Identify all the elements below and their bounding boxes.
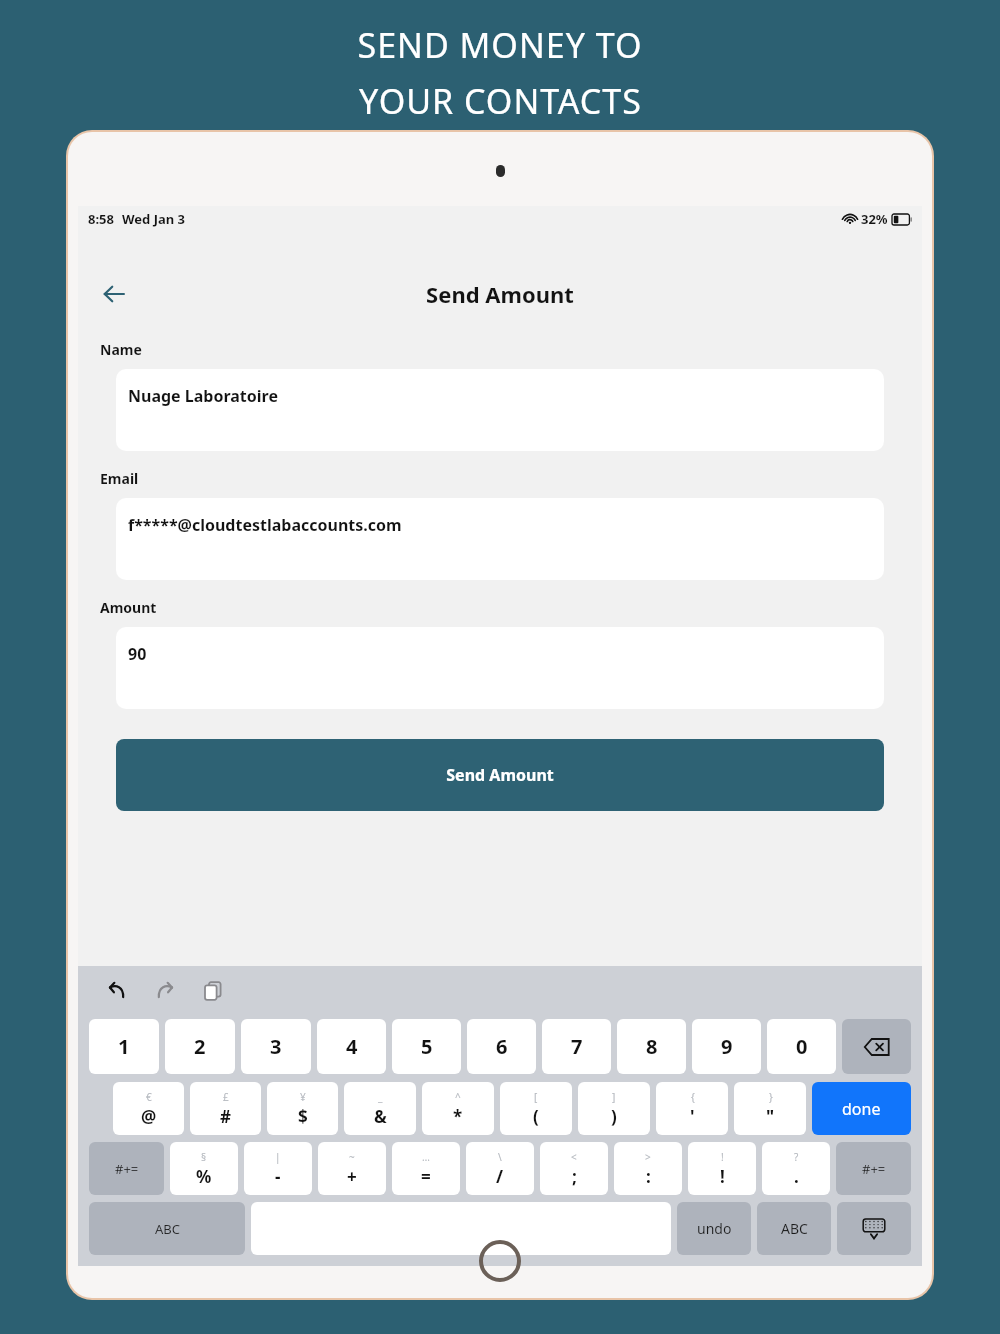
staticText: undo bbox=[697, 1219, 732, 1238]
staticText: 4 bbox=[346, 1033, 358, 1060]
button[interactable]: [ bbox=[500, 1082, 572, 1135]
staticText: ? bbox=[794, 1150, 799, 1164]
button[interactable]: 9 bbox=[692, 1019, 761, 1074]
button[interactable]: Back bbox=[92, 274, 136, 314]
staticText: _ bbox=[378, 1090, 383, 1104]
button[interactable]: #+= bbox=[836, 1142, 911, 1195]
staticText: … bbox=[422, 1150, 430, 1164]
button[interactable]: Send Amount bbox=[116, 739, 884, 811]
staticText: ( bbox=[533, 1105, 539, 1128]
staticText: \ bbox=[498, 1150, 502, 1164]
staticText: 7 bbox=[571, 1033, 583, 1060]
staticText: [ bbox=[534, 1090, 538, 1104]
button[interactable]: £ bbox=[190, 1082, 261, 1135]
staticText: 32% bbox=[861, 210, 888, 228]
staticText: > bbox=[645, 1150, 651, 1164]
staticText: 1 bbox=[118, 1033, 130, 1060]
button[interactable]: Redo bbox=[148, 974, 182, 1008]
button[interactable]: 8 bbox=[617, 1019, 686, 1074]
staticText: - bbox=[275, 1165, 281, 1188]
button[interactable]: > bbox=[614, 1142, 682, 1195]
staticText: € bbox=[146, 1090, 152, 1104]
button[interactable]: ¥ bbox=[267, 1082, 338, 1135]
staticText: ] bbox=[612, 1090, 616, 1104]
button[interactable]: € bbox=[113, 1082, 184, 1135]
button[interactable]: Hide keyboard bbox=[837, 1202, 911, 1255]
staticText: 3 bbox=[270, 1033, 282, 1060]
staticText: ) bbox=[611, 1105, 617, 1128]
button[interactable]: ? bbox=[762, 1142, 830, 1195]
button[interactable]: Space bbox=[251, 1202, 671, 1255]
staticText: ~ bbox=[349, 1150, 355, 1164]
staticText: + bbox=[347, 1165, 357, 1188]
staticText: # bbox=[220, 1105, 231, 1128]
button[interactable]: Undo bbox=[100, 974, 134, 1008]
button[interactable]: 6 bbox=[467, 1019, 536, 1074]
staticText: @ bbox=[141, 1105, 157, 1128]
button[interactable]: Nuage Laboratoire bbox=[116, 369, 884, 451]
staticText: < bbox=[571, 1150, 577, 1164]
staticText: Wed Jan 3 bbox=[122, 210, 186, 228]
button[interactable]: 7 bbox=[542, 1019, 611, 1074]
button[interactable]: 90 bbox=[116, 627, 884, 709]
staticText: ABC bbox=[155, 1220, 180, 1238]
button[interactable]: f*****@cloudtestlabaccounts.com bbox=[116, 498, 884, 580]
button[interactable]: } bbox=[734, 1082, 806, 1135]
staticText: ! bbox=[720, 1165, 725, 1188]
button[interactable]: 3 bbox=[241, 1019, 311, 1074]
button[interactable]: #+= bbox=[89, 1142, 164, 1195]
staticText: " bbox=[766, 1105, 775, 1128]
staticText: 8 bbox=[646, 1033, 658, 1060]
staticText: 9 bbox=[721, 1033, 733, 1060]
staticText: / bbox=[496, 1165, 504, 1188]
button[interactable]: ] bbox=[578, 1082, 650, 1135]
button[interactable]: | bbox=[244, 1142, 312, 1195]
button[interactable]: { bbox=[656, 1082, 728, 1135]
staticText: £ bbox=[223, 1090, 229, 1104]
staticText: ^ bbox=[455, 1090, 461, 1104]
button[interactable]: < bbox=[540, 1142, 608, 1195]
button[interactable]: … bbox=[392, 1142, 460, 1195]
button[interactable]: \ bbox=[466, 1142, 534, 1195]
staticText: 90 bbox=[128, 643, 147, 665]
button[interactable]: Paste bbox=[196, 974, 230, 1008]
button[interactable]: § bbox=[170, 1142, 238, 1195]
button[interactable]: ~ bbox=[318, 1142, 386, 1195]
button[interactable]: ! bbox=[688, 1142, 756, 1195]
button[interactable]: _ bbox=[344, 1082, 416, 1135]
staticText: ¥ bbox=[300, 1090, 306, 1104]
staticText: ' bbox=[690, 1105, 695, 1128]
staticText: Send Amount bbox=[446, 764, 554, 786]
button[interactable]: 4 bbox=[317, 1019, 386, 1074]
button[interactable]: ABC bbox=[89, 1202, 245, 1255]
button[interactable]: Backspace bbox=[842, 1019, 911, 1074]
button[interactable]: 2 bbox=[165, 1019, 235, 1074]
staticText: Send Amount bbox=[426, 279, 574, 309]
staticText: #+= bbox=[862, 1160, 886, 1178]
button[interactable]: undo bbox=[677, 1202, 751, 1255]
staticText: ABC bbox=[781, 1219, 808, 1238]
staticText: 2 bbox=[194, 1033, 206, 1060]
staticText: Amount bbox=[100, 598, 157, 617]
staticText: 8:58 bbox=[88, 210, 114, 228]
staticText: f*****@cloudtestlabaccounts.com bbox=[128, 514, 402, 536]
button[interactable]: done bbox=[812, 1082, 911, 1135]
staticText: 5 bbox=[421, 1033, 433, 1060]
button[interactable]: ^ bbox=[422, 1082, 494, 1135]
staticText: | bbox=[275, 1150, 281, 1164]
staticText: 0 bbox=[796, 1033, 808, 1060]
button[interactable]: ABC bbox=[757, 1202, 831, 1255]
staticText: & bbox=[374, 1105, 387, 1128]
staticText: } bbox=[769, 1090, 773, 1104]
staticText: #+= bbox=[115, 1160, 139, 1178]
staticText: = bbox=[421, 1165, 431, 1188]
staticText: § bbox=[201, 1150, 207, 1164]
button[interactable]: 1 bbox=[89, 1019, 159, 1074]
staticText: done bbox=[842, 1098, 881, 1120]
button[interactable]: 5 bbox=[392, 1019, 461, 1074]
staticText: { bbox=[691, 1090, 695, 1104]
staticText: Nuage Laboratoire bbox=[128, 385, 278, 407]
button[interactable]: 0 bbox=[767, 1019, 836, 1074]
staticText: % bbox=[196, 1165, 212, 1188]
staticText: $ bbox=[298, 1105, 308, 1128]
